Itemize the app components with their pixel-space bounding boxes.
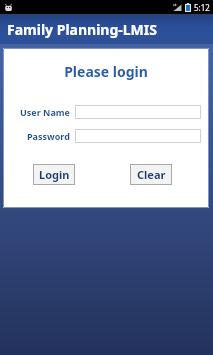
staticText: Family Planning-LMIS [7, 20, 157, 39]
button[interactable] [75, 105, 201, 119]
button[interactable]: Clear [130, 164, 172, 185]
staticText: User Name [20, 106, 70, 118]
staticText: Clear [137, 167, 166, 182]
staticText: Please login [3, 62, 209, 81]
staticText: Login [39, 167, 70, 182]
button[interactable] [75, 129, 201, 143]
staticText: Password [27, 130, 70, 142]
button[interactable]: Login [33, 164, 75, 185]
staticText: 5:12 [194, 2, 210, 13]
